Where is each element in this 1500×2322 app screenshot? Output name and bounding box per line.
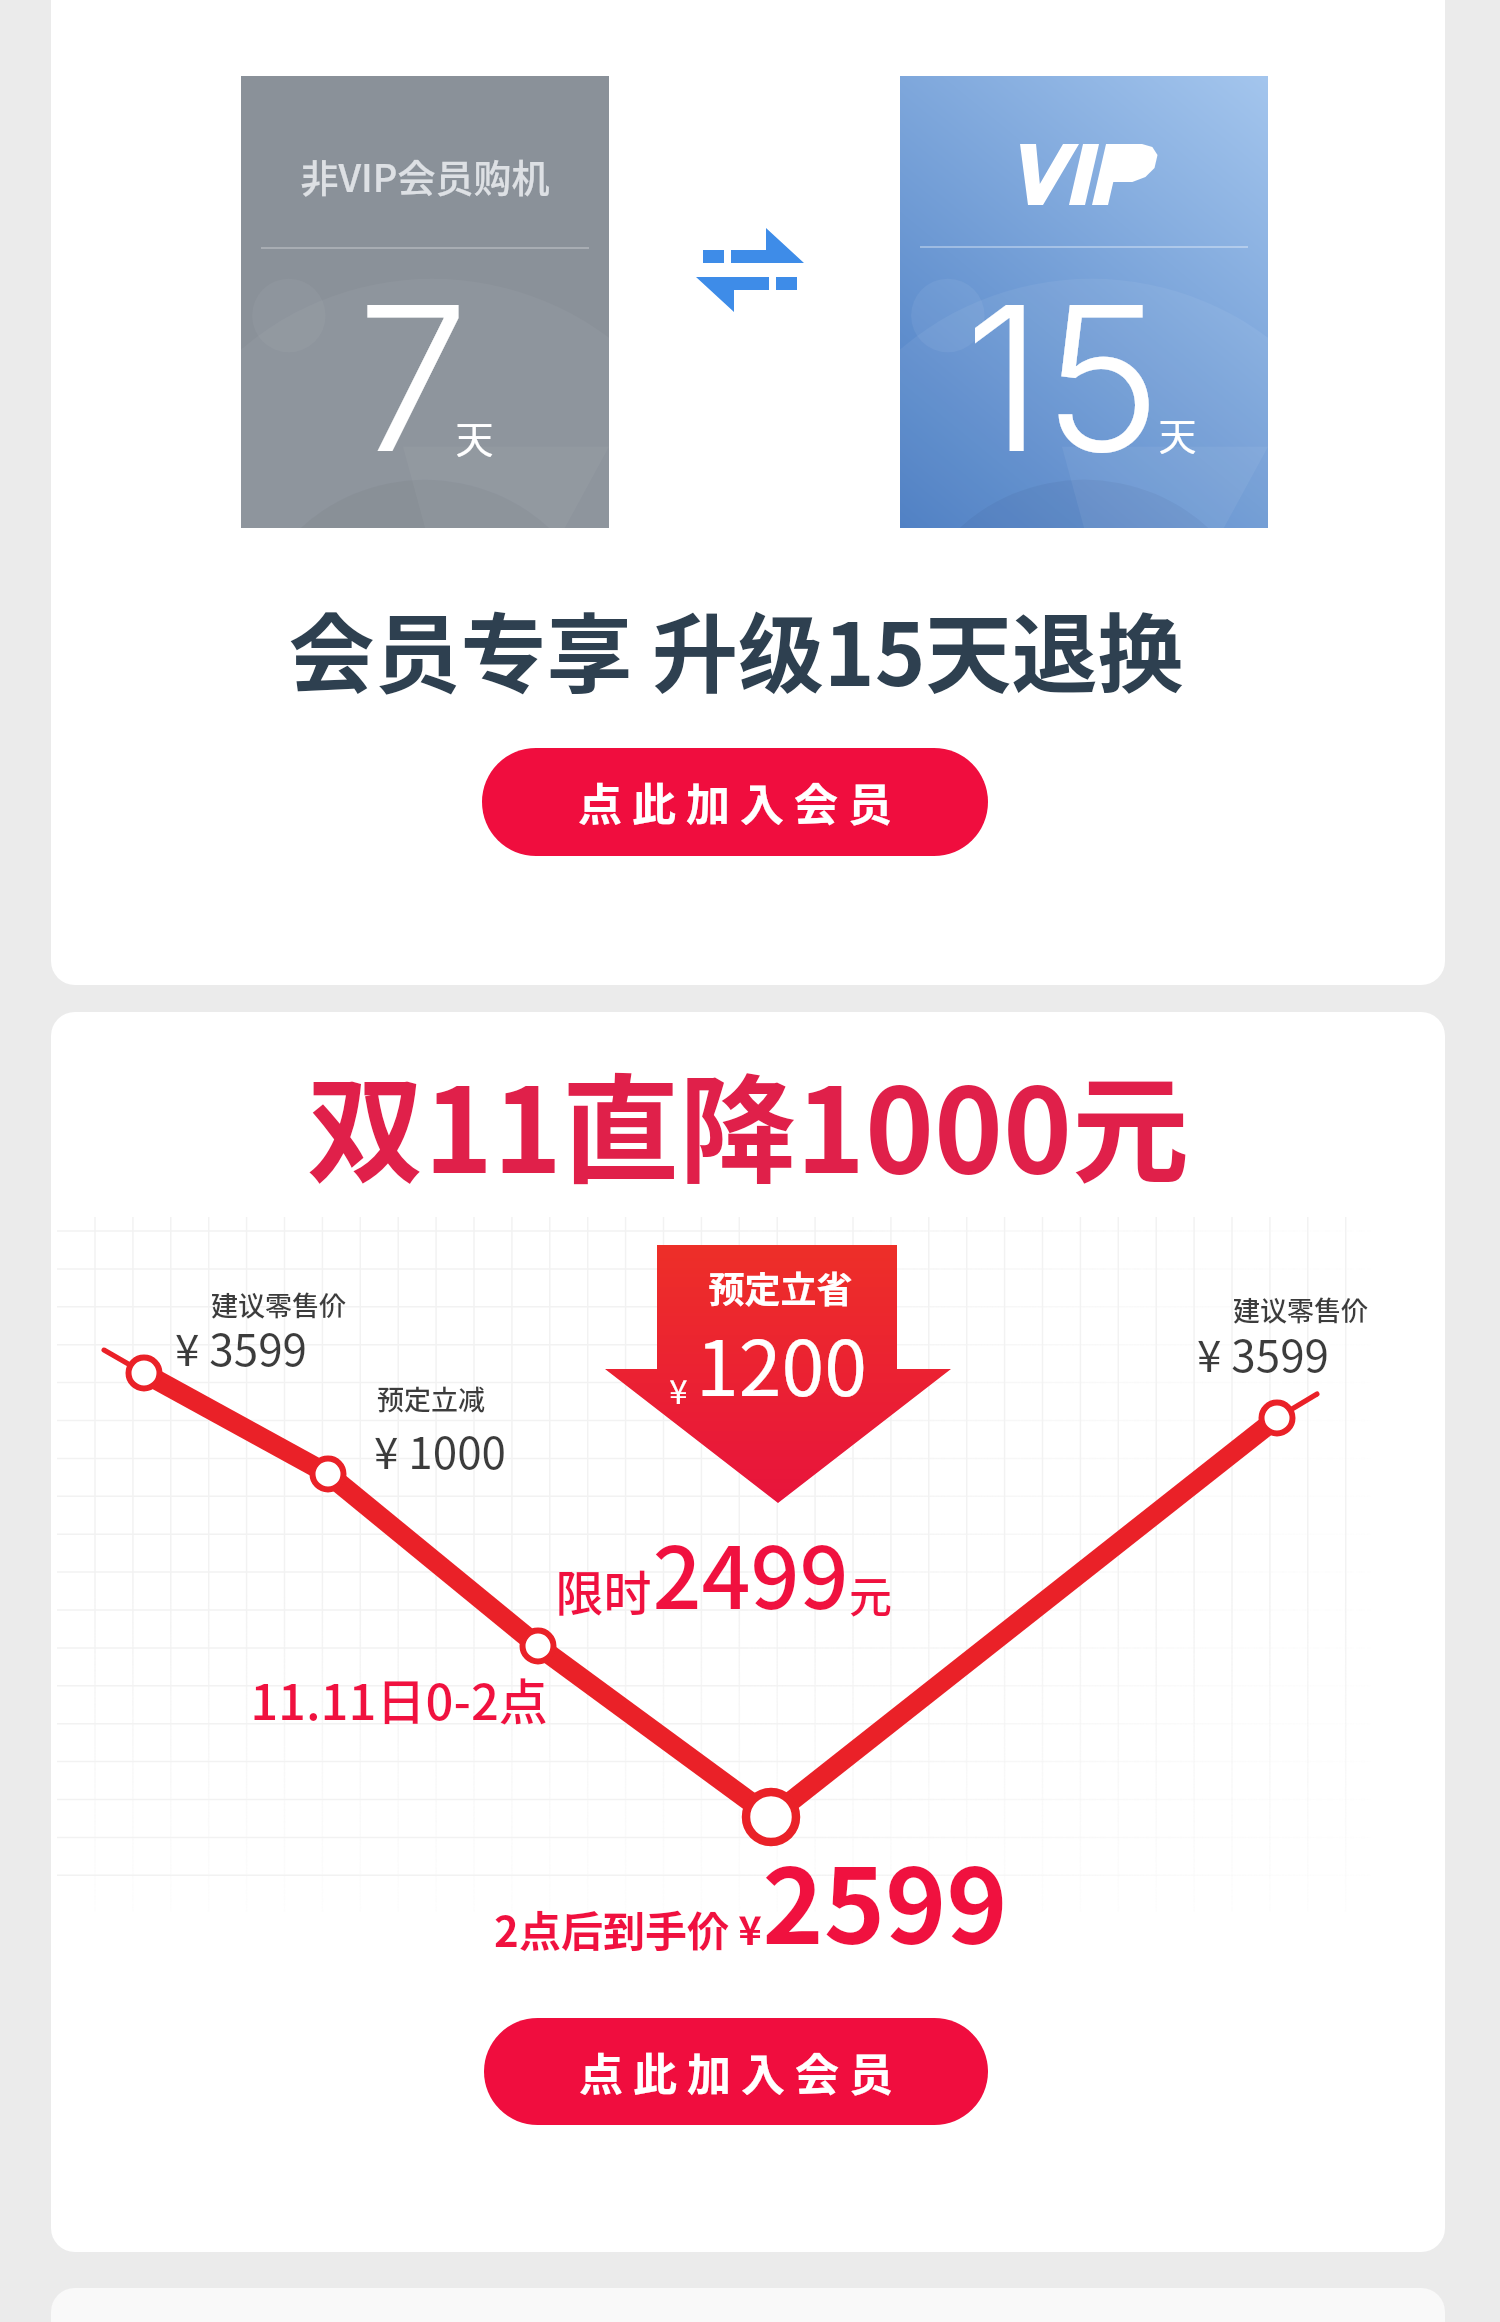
- button[interactable]: 点 此 加 入 会 员: [484, 2018, 988, 2125]
- staticText: 2599: [762, 1823, 1008, 1974]
- staticText: 2点后到手价: [494, 1898, 729, 1959]
- staticText: ¥ 3599: [1197, 1321, 1329, 1385]
- button[interactable]: 点 此 加 入 会 员: [482, 748, 988, 856]
- staticText: 天: [455, 409, 494, 464]
- staticText: 15: [964, 257, 1184, 499]
- staticText: 限时: [555, 1555, 652, 1625]
- staticText: 非VIP会员购机: [241, 148, 609, 203]
- staticText: 天: [1158, 406, 1197, 461]
- staticText: 会员专享 升级15天退换: [51, 586, 1433, 711]
- staticText: ¥ 3599: [175, 1315, 307, 1379]
- staticText: 点 此 加 入 会 员: [578, 770, 892, 834]
- staticText: ¥ 1000: [374, 1418, 506, 1482]
- staticText: 预定立减: [377, 1379, 485, 1418]
- staticText: 点 此 加 入 会 员: [579, 2040, 893, 2104]
- staticText: 预定立省: [708, 1261, 853, 1313]
- staticText: 11.11日0-2点: [250, 1663, 548, 1734]
- staticText: 双11直降1000元: [51, 1037, 1445, 1206]
- staticText: 2499: [652, 1509, 849, 1634]
- staticText: ¥: [669, 1366, 688, 1414]
- button[interactable]: Upgrade exchange: [691, 222, 809, 322]
- staticText: 7: [357, 257, 477, 499]
- staticText: 元: [849, 1563, 892, 1625]
- staticText: 1200: [696, 1307, 867, 1418]
- staticText: ¥: [738, 1899, 762, 1957]
- staticText: 建议零售价: [211, 1285, 346, 1324]
- staticText: 建议零售价: [1233, 1290, 1368, 1329]
